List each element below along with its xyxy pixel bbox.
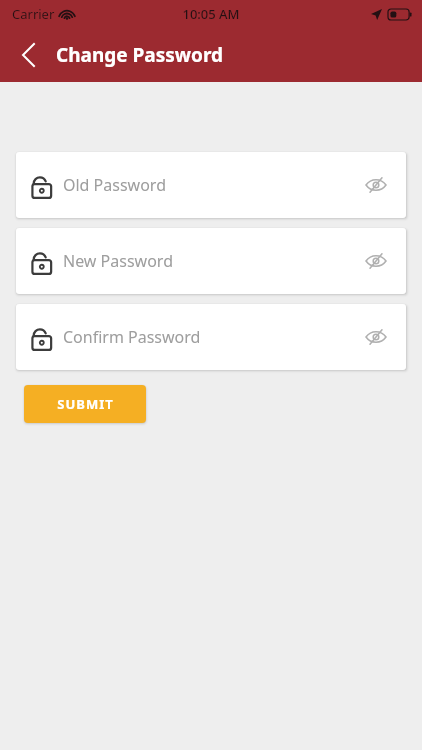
staticText: New Password xyxy=(63,250,173,272)
staticText: Confirm Password xyxy=(63,326,201,348)
staticText: Carrier xyxy=(12,5,55,23)
staticText: Old Password xyxy=(63,174,166,196)
button[interactable]: Show password xyxy=(360,169,392,201)
staticText: Change Password xyxy=(56,42,224,68)
staticText: 10:05 AM xyxy=(182,5,240,23)
button[interactable]: Show password xyxy=(360,245,392,277)
button[interactable]: Confirm Password xyxy=(16,304,406,370)
button[interactable]: SUBMIT xyxy=(24,385,146,423)
button[interactable]: Show password xyxy=(360,321,392,353)
button[interactable]: Back xyxy=(10,37,46,73)
staticText: SUBMIT xyxy=(57,395,114,413)
button[interactable]: New Password xyxy=(16,228,406,294)
button[interactable]: Old Password xyxy=(16,152,406,218)
